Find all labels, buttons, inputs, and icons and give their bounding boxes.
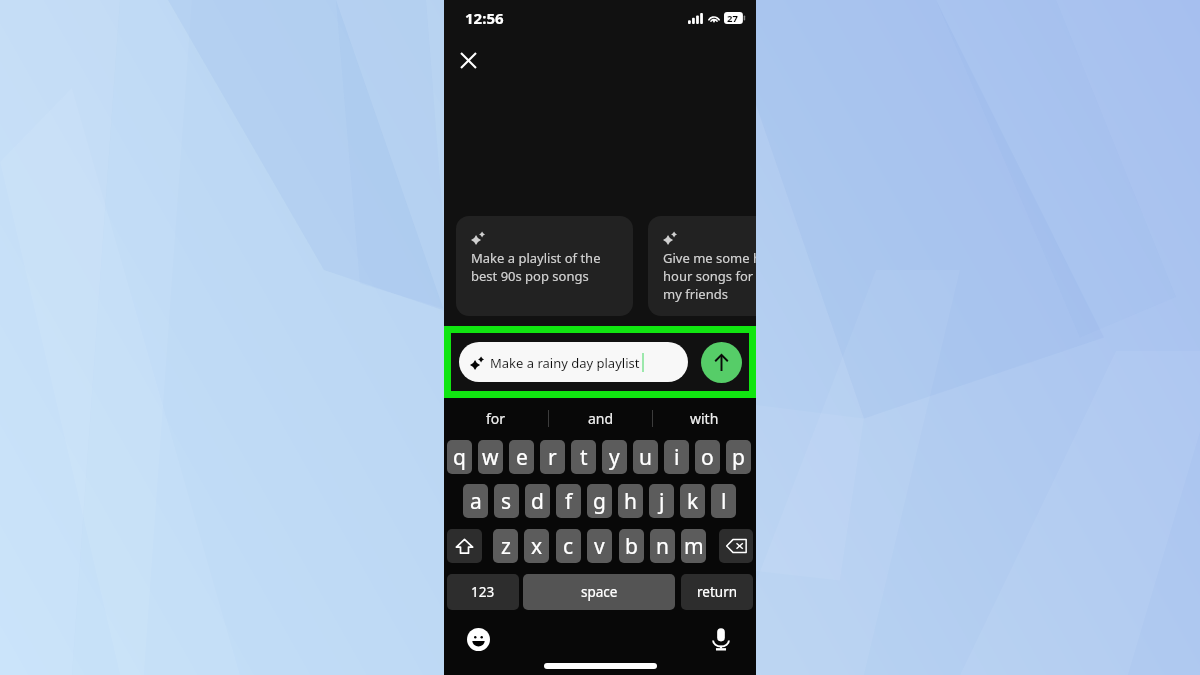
staticText: and [588, 409, 614, 428]
button[interactable]: return [681, 574, 753, 610]
staticText: e [516, 443, 528, 472]
button[interactable]: x [524, 529, 549, 563]
staticText: i [674, 443, 680, 472]
button[interactable]: m [681, 529, 706, 563]
staticText: l [721, 487, 727, 516]
staticText: 12:56 [465, 8, 504, 28]
staticText: space [581, 583, 618, 601]
button[interactable]: 123 [447, 574, 519, 610]
button[interactable]: Emoji [465, 626, 491, 652]
staticText: a [470, 487, 482, 516]
staticText: y [609, 443, 620, 472]
staticText: w [482, 443, 499, 472]
staticText: h [624, 487, 637, 516]
staticText: x [531, 532, 543, 561]
button[interactable]: o [695, 440, 720, 474]
button[interactable]: i [664, 440, 689, 474]
staticText: j [659, 487, 665, 516]
staticText: n [656, 532, 669, 561]
staticText: c [563, 532, 574, 561]
button[interactable]: a [463, 484, 488, 518]
staticText: with [690, 409, 719, 428]
button[interactable]: z [493, 529, 518, 563]
button[interactable]: Give me some high energy hour songs for … [648, 216, 756, 316]
staticText: g [593, 487, 606, 516]
staticText: u [639, 443, 652, 472]
button[interactable]: s [494, 484, 519, 518]
button[interactable]: n [650, 529, 675, 563]
button[interactable]: for [444, 399, 548, 438]
staticText: r [548, 443, 557, 472]
button[interactable]: j [649, 484, 674, 518]
staticText: p [732, 443, 745, 472]
button[interactable]: and [549, 399, 652, 438]
button[interactable]: c [556, 529, 581, 563]
staticText: Give me some high energy hour songs for … [663, 249, 756, 303]
button[interactable]: h [618, 484, 643, 518]
button[interactable]: Send [701, 342, 742, 383]
button[interactable]: b [619, 529, 644, 563]
staticText: Make a playlist of the best 90s pop song… [471, 249, 601, 285]
button[interactable]: f [556, 484, 581, 518]
button[interactable]: u [633, 440, 658, 474]
button[interactable]: Make a playlist of the best 90s pop song… [456, 216, 633, 316]
button[interactable]: with [653, 399, 756, 438]
button[interactable]: q [447, 440, 472, 474]
button[interactable]: v [587, 529, 612, 563]
staticText: d [531, 487, 544, 516]
button[interactable]: g [587, 484, 612, 518]
button[interactable]: Make a rainy day playlist [459, 342, 688, 382]
button[interactable]: r [540, 440, 565, 474]
button[interactable]: w [478, 440, 503, 474]
button[interactable]: k [680, 484, 705, 518]
button[interactable]: e [509, 440, 534, 474]
button[interactable]: space [523, 574, 675, 610]
button[interactable]: p [726, 440, 751, 474]
button[interactable]: y [602, 440, 627, 474]
button[interactable]: Voice input [708, 626, 734, 652]
button[interactable]: t [571, 440, 596, 474]
staticText: return [697, 583, 738, 601]
staticText: z [501, 532, 511, 561]
staticText: 27 [727, 12, 738, 24]
staticText: b [625, 532, 638, 561]
staticText: k [687, 487, 699, 516]
staticText: o [701, 443, 714, 472]
button[interactable]: Backspace [719, 529, 753, 563]
staticText: s [501, 487, 512, 516]
button[interactable]: l [711, 484, 736, 518]
staticText: m [684, 532, 704, 561]
staticText: v [594, 532, 605, 561]
button[interactable]: Shift [447, 529, 482, 563]
staticText: for [486, 409, 506, 428]
staticText: q [453, 443, 466, 472]
staticText: Make a rainy day playlist [490, 354, 640, 372]
button[interactable]: d [525, 484, 550, 518]
staticText: 123 [471, 583, 495, 601]
staticText: f [565, 487, 573, 516]
button[interactable]: Close [450, 42, 487, 79]
staticText: t [580, 443, 588, 472]
